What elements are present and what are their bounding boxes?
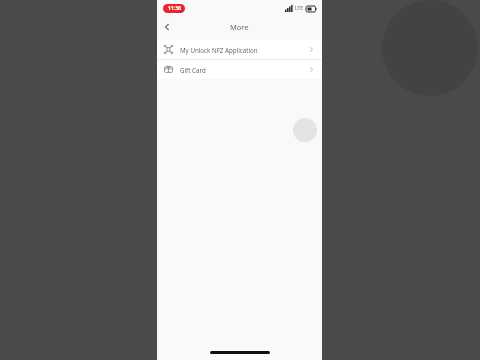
staticText: Gift Card xyxy=(180,66,206,74)
staticText: 11:36 xyxy=(168,5,181,12)
button[interactable]: My Unlock NFZ Application xyxy=(157,40,322,59)
button[interactable]: Assistive touch xyxy=(293,118,317,142)
button[interactable]: Gift Card xyxy=(157,60,322,79)
staticText: My Unlock NFZ Application xyxy=(180,46,258,54)
staticText: LTE xyxy=(295,5,304,12)
staticText: More xyxy=(230,22,249,32)
button[interactable]: Back xyxy=(157,17,177,37)
